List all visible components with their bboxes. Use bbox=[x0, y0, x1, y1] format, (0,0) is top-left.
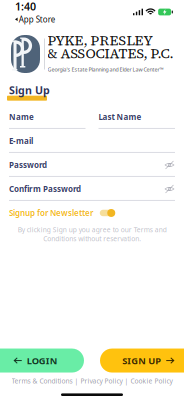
staticText: SIGN UP bbox=[122, 354, 161, 367]
staticText: 1:40 bbox=[15, 0, 36, 14]
button[interactable]: SIGN UP bbox=[100, 348, 184, 372]
staticText: LOGIN bbox=[27, 354, 58, 367]
staticText: Terms & Conditions | Privacy Policy | Co… bbox=[11, 376, 172, 385]
staticText: Georgia's Estate Planning and Elder Law … bbox=[48, 66, 164, 73]
button[interactable]: Show password bbox=[163, 161, 175, 168]
staticText: By clicking Sign up you agree to our Ter… bbox=[17, 225, 166, 243]
staticText: Signup for Newsletter bbox=[9, 208, 93, 218]
staticText: Last Name bbox=[98, 112, 141, 122]
staticText: Confirm Password bbox=[9, 184, 81, 194]
button[interactable]: Signup for Newsletter bbox=[9, 208, 114, 218]
button[interactable]: Terms & Conditions | Privacy Policy | Co… bbox=[11, 376, 172, 385]
staticText: & ASSOCIATES, P.C. bbox=[48, 44, 174, 63]
staticText: Name bbox=[9, 112, 34, 122]
staticText: App Store bbox=[19, 14, 56, 25]
staticText: PYKE, PRESLEY bbox=[48, 31, 153, 50]
button[interactable]: LOGIN bbox=[0, 348, 84, 372]
staticText: Sign Up bbox=[9, 83, 50, 97]
button[interactable]: Show password bbox=[163, 185, 175, 192]
staticText: Password bbox=[9, 160, 47, 170]
staticText: E-mail bbox=[9, 136, 33, 146]
